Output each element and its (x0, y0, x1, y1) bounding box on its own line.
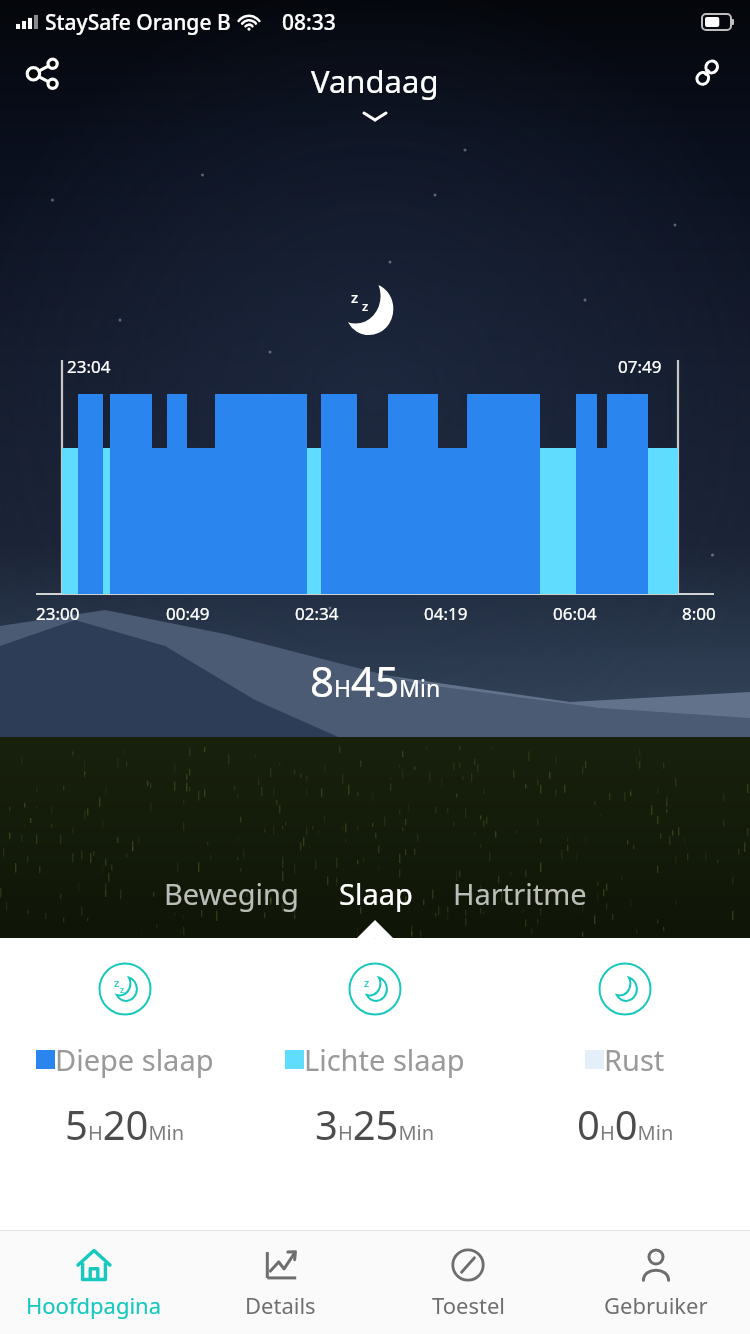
button[interactable]: Gebruiker (562, 1231, 750, 1334)
staticText: StaySafe Orange B (45, 8, 231, 37)
staticText: Gebruiker (604, 1290, 708, 1320)
staticText: 02:34 (295, 602, 339, 625)
staticText: Hoofdpagina (26, 1290, 162, 1320)
staticText: 23:00 (36, 602, 80, 625)
staticText: z (351, 287, 359, 307)
staticText: Diepe slaap (55, 1040, 214, 1079)
staticText: z (362, 297, 369, 315)
staticText: Toestel (432, 1290, 505, 1320)
staticText: z (364, 975, 370, 990)
staticText: Lichte slaap (304, 1040, 465, 1079)
staticText: Rust (604, 1040, 665, 1079)
staticText: 04:19 (424, 602, 468, 625)
staticText: 8:00 (682, 602, 716, 625)
button[interactable]: Link (682, 48, 732, 98)
button[interactable]: Share (18, 48, 68, 98)
button[interactable]: Toestel (374, 1231, 562, 1334)
staticText: z (120, 983, 125, 995)
button[interactable]: Hoofdpagina (0, 1231, 187, 1334)
staticText: 8H45Min (310, 652, 441, 709)
staticText: 07:49 (618, 355, 662, 378)
staticText: Beweging (164, 874, 299, 913)
staticText: Details (245, 1290, 316, 1320)
button[interactable]: Details (187, 1231, 374, 1334)
staticText: Vandaag (311, 60, 439, 102)
staticText: 23:04 (67, 355, 111, 378)
staticText: 00:49 (166, 602, 210, 625)
staticText: 0H0Min (577, 1097, 674, 1151)
staticText: z (114, 975, 120, 990)
staticText: Slaap (339, 874, 413, 913)
staticText: 3H25Min (315, 1097, 435, 1151)
staticText: 5H20Min (65, 1097, 185, 1151)
staticText: Hartritme (453, 874, 587, 913)
button[interactable]: Slaap (319, 868, 433, 919)
button[interactable]: Hartritme (433, 868, 607, 919)
staticText: 08:33 (282, 8, 336, 37)
staticText: 06:04 (553, 602, 597, 625)
button[interactable]: Beweging (144, 868, 319, 919)
button[interactable]: Vandaag (311, 60, 439, 102)
